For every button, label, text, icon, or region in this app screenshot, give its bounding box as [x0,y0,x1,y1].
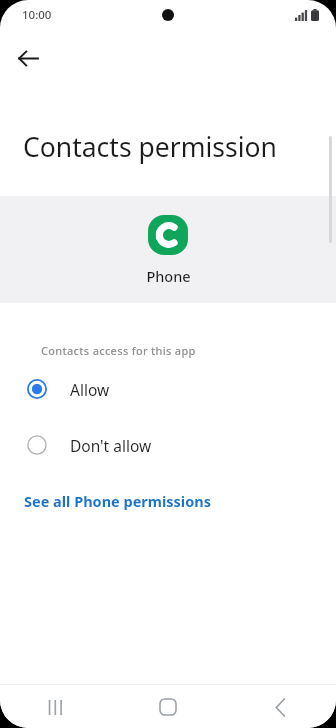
button[interactable]: See all Phone permissions [0,487,336,515]
button[interactable]: Recent apps [36,687,76,727]
staticText: Contacts permission [23,129,277,165]
staticText: See all Phone permissions [24,491,211,511]
staticText: Allow [70,379,110,400]
staticText: Phone [146,266,191,286]
button[interactable]: Allow [0,372,336,406]
button[interactable]: Home [148,687,188,727]
button[interactable]: Back [9,39,47,77]
button[interactable]: Back [260,687,300,727]
button[interactable]: Don't allow [0,428,336,462]
staticText: Don't allow [70,435,152,456]
staticText: Contacts access for this app [41,343,196,358]
staticText: 10:00 [22,7,52,23]
